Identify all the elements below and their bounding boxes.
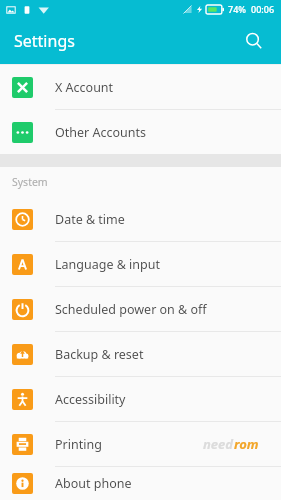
staticText: Settings (14, 30, 75, 52)
button[interactable]: About phone (0, 467, 281, 500)
button[interactable]: Search (237, 24, 271, 58)
staticText: Date & time (55, 211, 125, 228)
button[interactable]: Backup & reset (0, 332, 281, 376)
button[interactable]: Scheduled power on & off (0, 287, 281, 331)
button[interactable]: X Account (0, 65, 281, 109)
staticText: need (203, 435, 234, 453)
staticText: Other Accounts (55, 124, 146, 141)
staticText: Printing (55, 436, 102, 453)
staticText: rom (234, 435, 259, 453)
staticText: Backup & reset (55, 346, 144, 363)
button[interactable]: Printing (0, 422, 281, 466)
staticText: About phone (55, 475, 132, 492)
staticText: System (12, 175, 48, 189)
button[interactable]: Accessibility (0, 377, 281, 421)
staticText: Accessibility (55, 391, 126, 408)
button[interactable]: Date & time (0, 197, 281, 241)
staticText: Scheduled power on & off (55, 301, 207, 318)
staticText: 00:06 (251, 3, 275, 15)
button[interactable]: Other Accounts (0, 110, 281, 154)
staticText: 74% (228, 3, 246, 15)
button[interactable]: Language & input (0, 242, 281, 286)
staticText: Language & input (55, 256, 160, 273)
staticText: X Account (55, 79, 114, 96)
